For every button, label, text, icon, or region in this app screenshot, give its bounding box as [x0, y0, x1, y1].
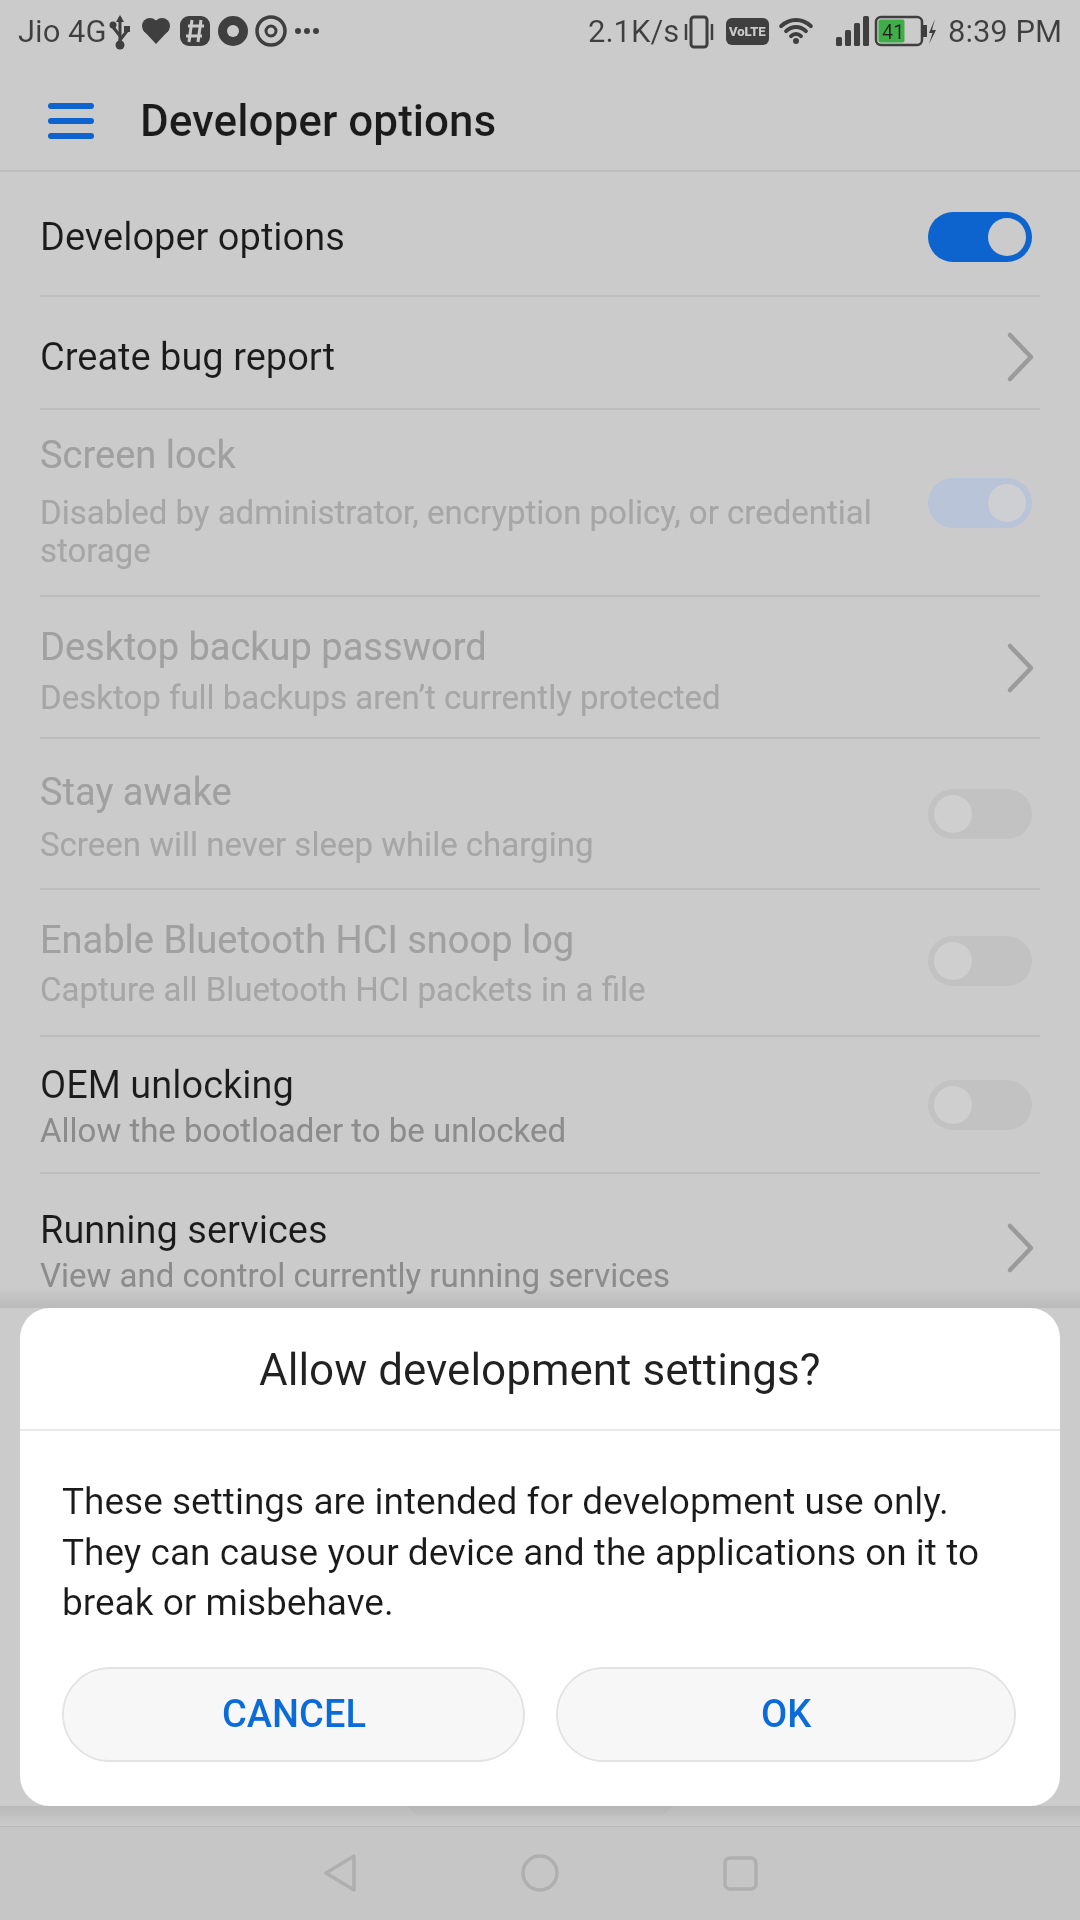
button[interactable] [700, 1840, 780, 1906]
button[interactable]: OK [556, 1667, 1016, 1762]
button[interactable]: Desktop backup password [0, 597, 1080, 737]
staticText: Desktop full backups aren’t currently pr… [40, 678, 721, 717]
staticText: 2.1K/s [588, 13, 680, 49]
button[interactable]: Stay awake [0, 739, 1080, 888]
button[interactable]: Enable Bluetooth HCI snoop log [0, 890, 1080, 1035]
staticText: Screen lock [40, 433, 236, 478]
staticText: Allow development settings? [259, 1344, 821, 1396]
staticText: Running services [40, 1208, 328, 1253]
button[interactable]: Screen lock [0, 410, 1080, 595]
staticText: Developer options [140, 95, 497, 147]
staticText: These settings are intended for developm… [62, 1480, 979, 1624]
button[interactable]: Developer options [0, 172, 1080, 295]
staticText: Capture all Bluetooth HCI packets in a f… [40, 970, 646, 1009]
staticText: Jio 4G [18, 13, 107, 49]
staticText: Stay awake [40, 770, 232, 815]
staticText: Allow the bootloader to be unlocked [40, 1111, 567, 1150]
staticText: Disabled by administrator, encryption po… [40, 493, 872, 570]
button[interactable] [500, 1840, 580, 1906]
staticText: OEM unlocking [40, 1063, 294, 1108]
staticText: VoLTE [729, 24, 766, 39]
staticText: Screen will never sleep while charging [40, 825, 594, 864]
staticText: Create bug report [40, 335, 336, 380]
button[interactable] [300, 1840, 380, 1906]
staticText: OK [761, 1692, 812, 1737]
staticText: CANCEL [222, 1692, 366, 1737]
button[interactable] [48, 103, 94, 139]
button[interactable]: OEM unlocking [0, 1037, 1080, 1172]
staticText: Enable Bluetooth HCI snoop log [40, 918, 575, 963]
staticText: 41 [882, 20, 905, 43]
button[interactable]: CANCEL [62, 1667, 525, 1762]
staticText: Desktop backup password [40, 625, 487, 670]
staticText: View and control currently running servi… [40, 1256, 670, 1295]
button[interactable]: Create bug report [0, 297, 1080, 408]
staticText: 8:39 PM [948, 13, 1063, 49]
button[interactable]: Running services [0, 1174, 1080, 1306]
staticText: Developer options [40, 215, 345, 260]
